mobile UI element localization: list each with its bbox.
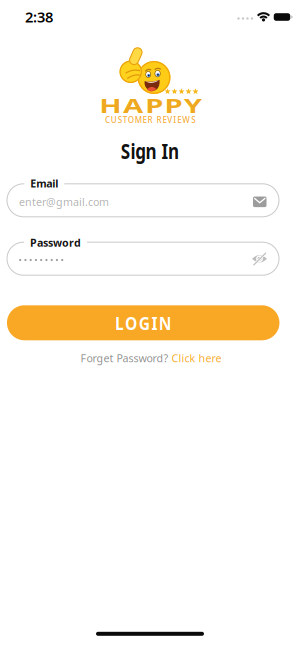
staticText: O	[128, 114, 134, 125]
staticText: P	[160, 92, 172, 119]
staticText: enter@gmail.com	[19, 195, 109, 209]
staticText: P	[147, 92, 159, 119]
staticText: S	[191, 114, 195, 125]
staticText: A	[132, 92, 146, 119]
button[interactable]: Password	[7, 242, 279, 275]
staticText: Click here	[171, 351, 221, 365]
staticText: E	[162, 114, 166, 125]
staticText: I	[152, 312, 159, 335]
staticText: E	[143, 114, 147, 125]
staticText: Y	[173, 92, 186, 119]
staticText: U	[111, 114, 117, 125]
staticText: V	[167, 114, 172, 125]
staticText: C	[105, 114, 110, 125]
staticText: R	[147, 114, 152, 125]
staticText: S	[118, 114, 122, 125]
staticText: Sign In	[113, 136, 186, 165]
staticText: H	[116, 92, 131, 119]
staticText: O	[123, 312, 137, 335]
staticText: L	[112, 312, 122, 335]
staticText: N	[161, 312, 175, 335]
staticText: M	[135, 114, 142, 125]
staticText: Password	[30, 235, 81, 250]
staticText: R	[156, 114, 161, 125]
staticText: W	[182, 114, 190, 125]
staticText: 2:38	[25, 7, 53, 27]
button[interactable]: Show password	[248, 248, 270, 270]
staticText: T	[123, 114, 127, 125]
staticText: Email	[30, 176, 58, 190]
staticText: Forget Password?	[80, 351, 168, 365]
staticText: I	[173, 114, 176, 125]
button[interactable]: enter@gmail.com	[7, 184, 279, 217]
staticText: E	[177, 114, 181, 125]
staticText: G	[138, 312, 151, 335]
button[interactable]: Click here	[171, 351, 221, 365]
button[interactable]: L	[7, 305, 279, 340]
